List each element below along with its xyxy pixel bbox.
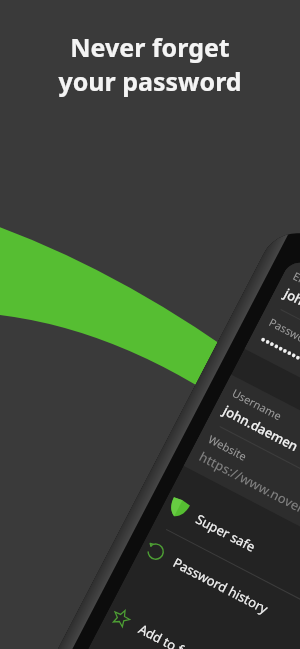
staticText: Website [206, 431, 250, 464]
staticText: Add to favorites [136, 620, 230, 649]
other: Super safe [166, 496, 190, 520]
other: Add to favorites [109, 606, 133, 630]
staticText: john.daemen@gmail.com [281, 284, 300, 373]
staticText: john.daemen [220, 401, 300, 455]
button[interactable]: Website [183, 420, 300, 625]
staticText: your password [58, 64, 242, 98]
staticText: Password history [170, 553, 272, 618]
button[interactable]: Username [207, 374, 300, 579]
staticText: Email [291, 268, 300, 295]
button[interactable]: Password history [131, 523, 300, 649]
staticText: https://www.novermint.com [196, 447, 300, 544]
staticText: Never forget [70, 30, 230, 64]
button[interactable]: Add to favorites [97, 590, 300, 649]
button[interactable]: Super safe [154, 480, 300, 649]
staticText: •••••••••••• [257, 330, 300, 373]
button[interactable]: Password [244, 303, 300, 508]
other: Password history [144, 539, 168, 564]
staticText: Username [230, 385, 285, 423]
staticText: Super safe [193, 510, 259, 556]
staticText: Password [267, 314, 300, 351]
button[interactable]: Email [268, 257, 300, 462]
